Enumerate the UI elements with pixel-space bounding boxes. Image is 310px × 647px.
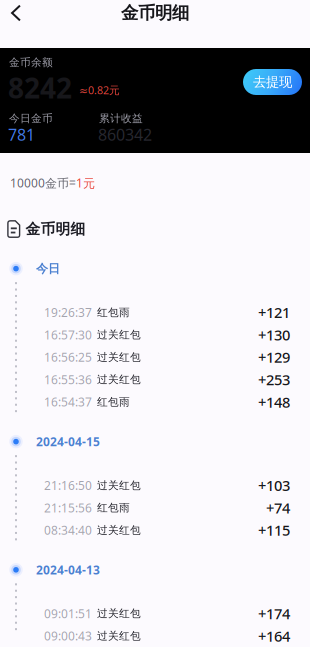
staticText: 16:55:36 <box>44 372 92 387</box>
staticText: 金币余额 <box>9 56 53 69</box>
staticText: 过关红包 <box>97 373 141 386</box>
staticText: 09:00:43 <box>44 628 92 644</box>
staticText: 过关红包 <box>97 607 141 620</box>
staticText: 过关红包 <box>97 524 141 537</box>
staticText: +115 <box>258 520 290 540</box>
staticText: 红包雨 <box>97 395 130 408</box>
staticText: +74 <box>266 498 290 517</box>
staticText: 21:15:56 <box>44 500 92 516</box>
staticText: +253 <box>258 370 290 389</box>
staticText: 09:01:51 <box>44 606 92 621</box>
staticText: +174 <box>258 604 290 623</box>
staticText: +148 <box>258 392 290 412</box>
staticText: +121 <box>258 303 290 322</box>
staticText: 今日金币 <box>9 112 53 125</box>
staticText: 累计收益 <box>99 112 143 125</box>
staticText: 今日 <box>36 261 60 276</box>
staticText: 16:56:25 <box>44 349 92 365</box>
staticText: 16:57:30 <box>44 327 92 343</box>
staticText: 过关红包 <box>97 328 141 341</box>
staticText: +129 <box>258 347 290 367</box>
staticText: 19:26:37 <box>44 304 92 320</box>
staticText: +130 <box>258 325 290 344</box>
button[interactable]: 返回 <box>3 0 29 26</box>
staticText: 860342 <box>98 124 152 145</box>
staticText: 8242 <box>8 69 72 106</box>
staticText: 10000金币= <box>10 175 76 191</box>
staticText: 1元 <box>76 175 95 191</box>
button[interactable]: 去提现 <box>243 69 302 95</box>
staticText: 去提现 <box>253 74 292 90</box>
staticText: 08:34:40 <box>44 522 92 538</box>
staticText: 16:54:37 <box>44 394 92 410</box>
staticText: 红包雨 <box>97 501 130 514</box>
staticText: 781 <box>8 124 35 145</box>
staticText: 2024-04-15 <box>36 434 100 450</box>
staticText: 金币明细 <box>25 220 85 238</box>
staticText: +164 <box>258 626 290 646</box>
staticText: 21:16:50 <box>44 477 92 493</box>
staticText: 过关红包 <box>97 351 141 364</box>
staticText: +103 <box>258 476 290 495</box>
staticText: 过关红包 <box>97 479 141 492</box>
staticText: 2024-04-13 <box>36 562 100 578</box>
staticText: ≈0.82元 <box>79 83 120 97</box>
staticText: 过关红包 <box>97 629 141 642</box>
staticText: 红包雨 <box>97 306 130 319</box>
staticText: 金币明细 <box>121 2 189 24</box>
